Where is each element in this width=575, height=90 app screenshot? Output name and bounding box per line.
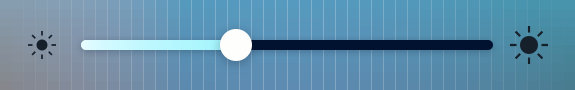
button[interactable]: Decrease brightness xyxy=(27,30,57,60)
button[interactable]: Increase brightness xyxy=(509,25,549,65)
